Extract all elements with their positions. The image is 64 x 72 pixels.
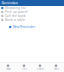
staticText: Today — [5, 67, 10, 70]
button[interactable]: New Reminder — [0, 25, 64, 29]
staticText: Pick up parcel — [5, 10, 28, 14]
staticText: Lists — [21, 67, 26, 70]
staticText: New Reminder — [13, 25, 35, 29]
button[interactable]: Pick up parcel — [0, 10, 64, 14]
button[interactable]: Shopping list — [0, 6, 64, 10]
staticText: Shopping list — [5, 6, 26, 10]
button[interactable]: Lists — [16, 63, 32, 71]
button[interactable]: Search — [32, 63, 48, 71]
staticText: Search — [36, 67, 43, 70]
staticText: Call the bank — [5, 14, 26, 18]
button[interactable]: Book a table — [0, 18, 64, 22]
staticText: Book a table — [5, 18, 25, 22]
button[interactable]: Call the bank — [0, 14, 64, 18]
button[interactable]: More — [48, 63, 64, 71]
staticText: More — [53, 67, 58, 70]
staticText: Reminders — [1, 1, 18, 5]
button[interactable]: Today — [0, 63, 16, 71]
